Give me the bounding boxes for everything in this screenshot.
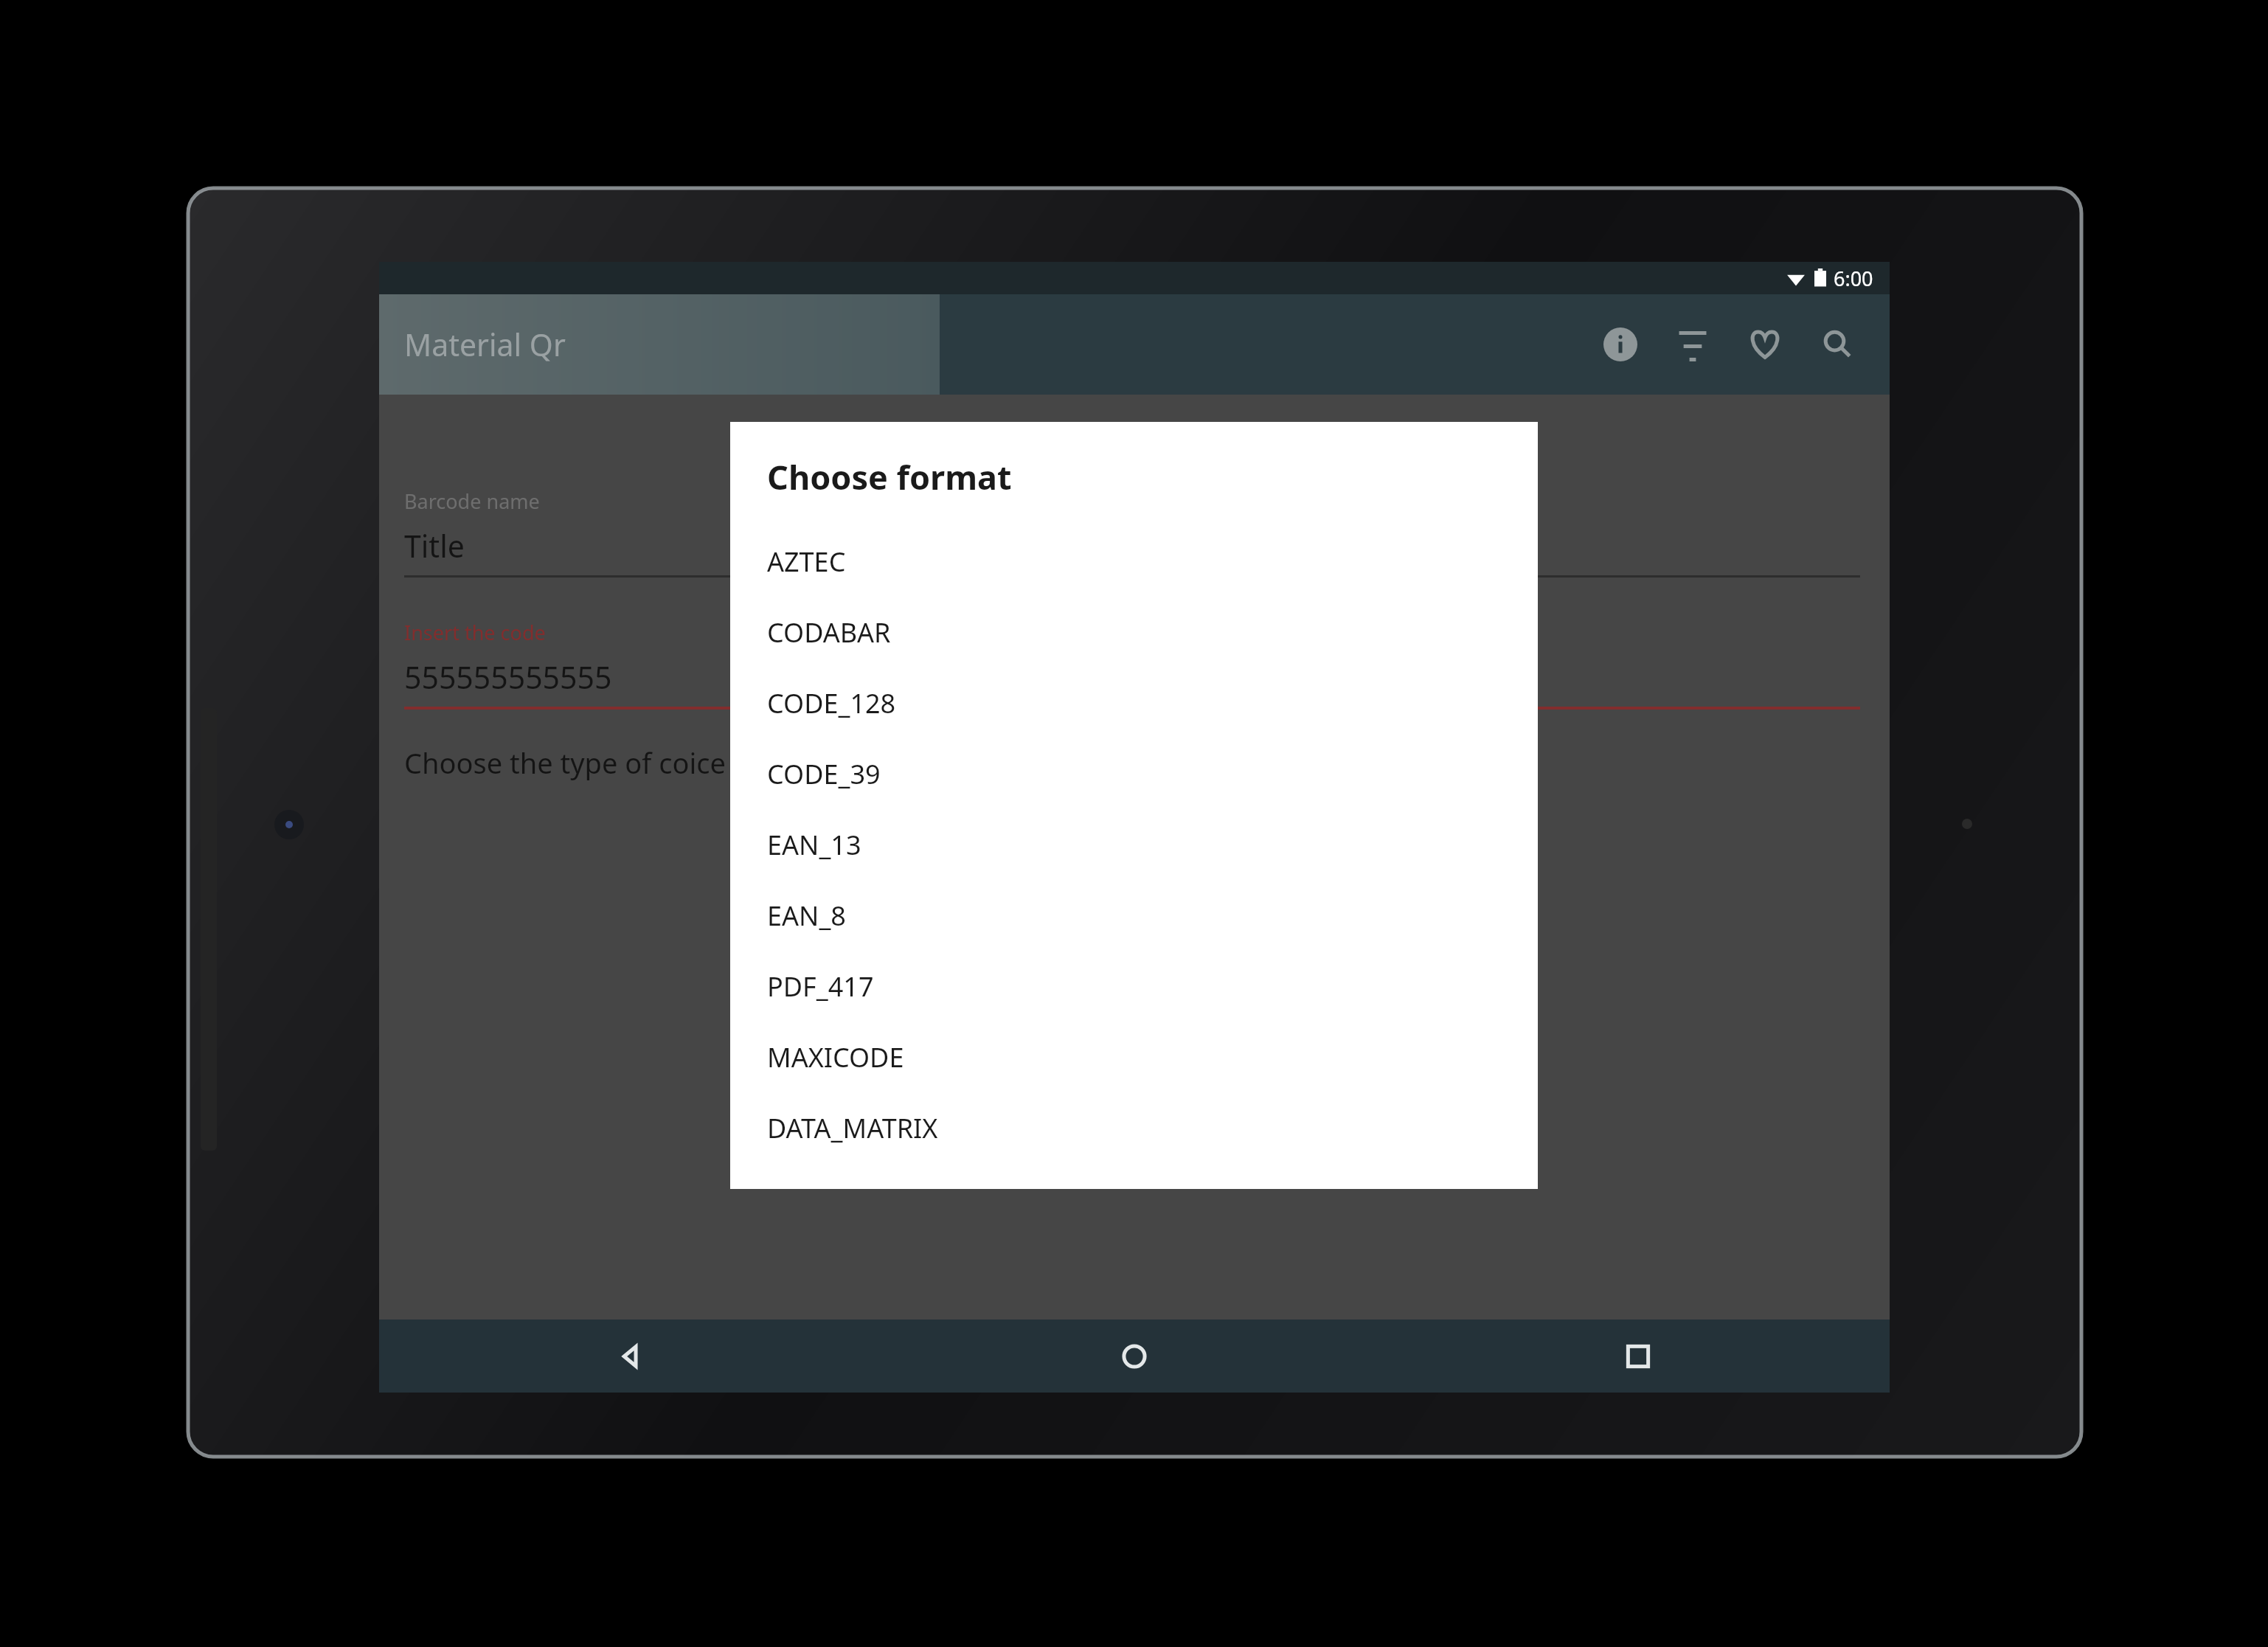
staticText: Choose format <box>767 454 1012 499</box>
staticText: 555555555555 <box>404 656 612 698</box>
button[interactable]: Recents <box>1386 1320 1890 1393</box>
staticText: Title <box>404 525 465 566</box>
staticText: DATA_MATRIX <box>767 1110 938 1146</box>
staticText: AZTEC <box>767 544 846 580</box>
button[interactable]: CODE_39 <box>767 738 1501 809</box>
button[interactable]: Home <box>882 1320 1386 1393</box>
staticText: PDF_417 <box>767 968 874 1005</box>
button[interactable]: CODABAR <box>767 597 1501 668</box>
button[interactable]: EAN_8 <box>767 880 1501 951</box>
button[interactable]: MAXICODE <box>767 1022 1501 1092</box>
staticText: Insert the code <box>404 619 546 646</box>
staticText: CODABAR <box>767 614 891 651</box>
staticText: Barcode name <box>404 488 540 515</box>
staticText: CODE_128 <box>767 685 896 721</box>
staticText: CODE_39 <box>767 756 881 792</box>
button[interactable]: Back <box>379 1320 882 1393</box>
staticText: EAN_13 <box>767 827 861 863</box>
button[interactable]: Search <box>1801 308 1873 381</box>
staticText: 6:00 <box>1834 265 1873 292</box>
button[interactable]: CODE_128 <box>767 668 1501 738</box>
staticText: MAXICODE <box>767 1039 904 1075</box>
staticText: EAN_8 <box>767 898 846 934</box>
button[interactable]: Info <box>1584 308 1657 381</box>
button[interactable]: DATA_MATRIX <box>767 1092 1501 1163</box>
button[interactable]: EAN_13 <box>767 809 1501 880</box>
button[interactable]: Favourites <box>1729 308 1801 381</box>
button[interactable]: PDF_417 <box>767 951 1501 1022</box>
button[interactable]: AZTEC <box>767 526 1501 597</box>
staticText: Material Qr <box>404 324 566 365</box>
button[interactable]: Filter <box>1657 308 1729 381</box>
staticText: Choose the type of coice to generate <box>404 743 887 782</box>
